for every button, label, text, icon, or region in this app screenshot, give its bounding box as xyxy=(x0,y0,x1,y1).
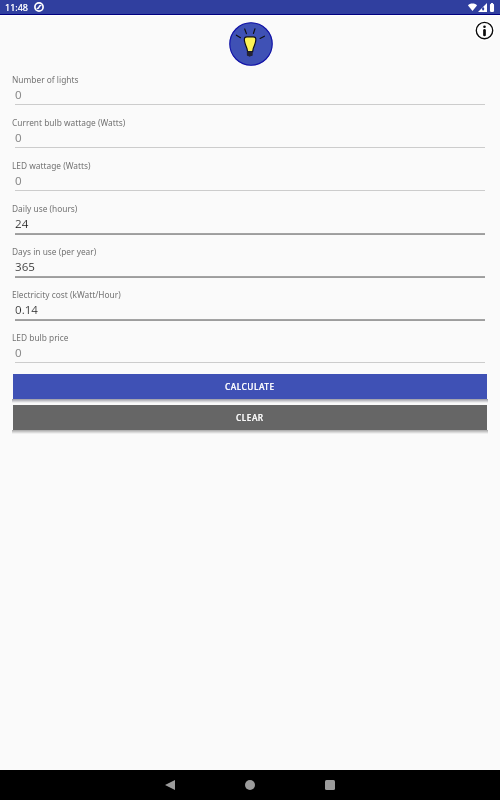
staticText: 365 xyxy=(15,259,35,275)
staticText: 0 xyxy=(15,130,22,146)
button[interactable]: Daily use (hours) xyxy=(0,199,500,242)
button[interactable]: Number of lights xyxy=(0,70,500,113)
staticText: CALCULATE xyxy=(225,381,275,392)
staticText: 24 xyxy=(15,216,29,232)
button[interactable]: Days in use (per year) xyxy=(0,242,500,285)
staticText: Electricity cost (kWatt/Hour) xyxy=(12,289,121,300)
staticText: LED wattage (Watts) xyxy=(12,160,91,171)
staticText: 0 xyxy=(15,87,22,103)
button[interactable]: Current bulb wattage (Watts) xyxy=(0,113,500,156)
staticText: Days in use (per year) xyxy=(12,246,97,257)
staticText: 11:48 xyxy=(5,1,29,13)
staticText: 0.14 xyxy=(15,302,39,318)
staticText: Daily use (hours) xyxy=(12,203,78,214)
button[interactable]: CLEAR xyxy=(13,405,487,430)
staticText: Number of lights xyxy=(12,74,79,85)
button[interactable]: Home xyxy=(238,773,262,797)
button[interactable]: Back xyxy=(158,773,182,797)
staticText: LED bulb price xyxy=(12,332,69,343)
button[interactable]: Info xyxy=(472,18,497,43)
button[interactable]: LED wattage (Watts) xyxy=(0,156,500,199)
button[interactable]: CALCULATE xyxy=(13,374,487,399)
staticText: Current bulb wattage (Watts) xyxy=(12,117,126,128)
button[interactable]: LED bulb price xyxy=(0,328,500,371)
staticText: 0 xyxy=(15,173,22,189)
staticText: 0 xyxy=(15,345,22,361)
staticText: CLEAR xyxy=(236,412,264,423)
button[interactable]: Recents xyxy=(318,773,342,797)
button[interactable]: Electricity cost (kWatt/Hour) xyxy=(0,285,500,328)
